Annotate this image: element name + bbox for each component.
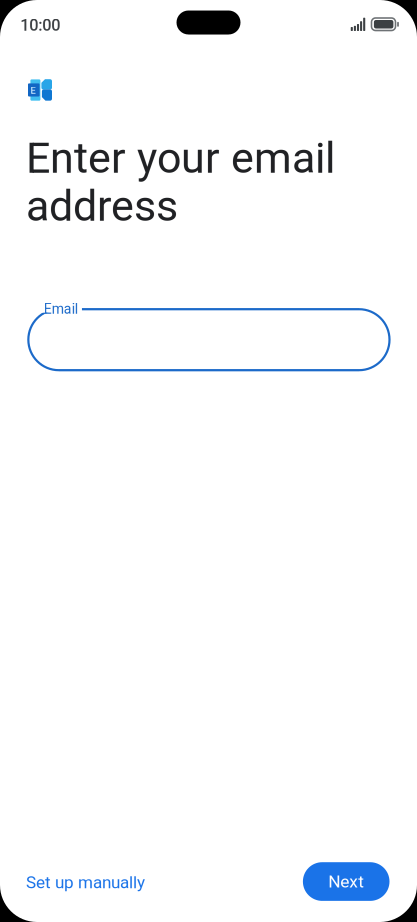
staticText: Set up manually xyxy=(26,872,145,892)
staticText: 10:00 xyxy=(20,16,60,35)
button[interactable]: Set up manually xyxy=(26,862,166,902)
button[interactable]: Next xyxy=(303,862,389,901)
staticText: Enter your email xyxy=(26,133,335,183)
staticText: address xyxy=(26,181,178,231)
staticText: E xyxy=(31,85,36,96)
staticText: Next xyxy=(328,871,364,892)
staticText: Email xyxy=(44,301,78,317)
